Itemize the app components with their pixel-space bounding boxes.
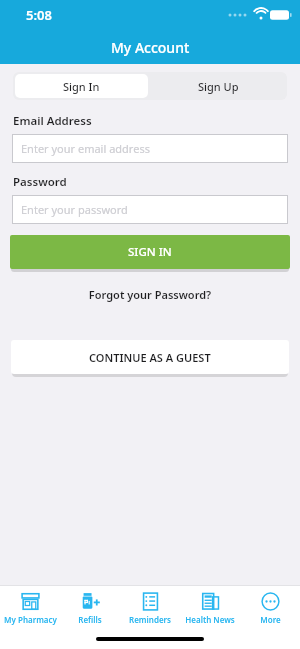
button[interactable]: CONTINUE AS A GUEST — [11, 340, 289, 374]
button[interactable]: Enter your email address — [12, 134, 288, 163]
button[interactable]: SIGN IN — [10, 235, 290, 269]
staticText: Email Address — [13, 113, 92, 129]
staticText: Sign Up — [198, 79, 239, 94]
staticText: Sign In — [63, 79, 100, 94]
button[interactable]: Sign Up — [150, 72, 287, 100]
staticText: Enter your email address — [21, 141, 150, 156]
staticText: SIGN IN — [128, 244, 172, 260]
staticText: Reminders — [129, 614, 171, 625]
button[interactable]: Enter your password — [12, 195, 288, 224]
staticText: More — [260, 614, 281, 625]
button[interactable]: My Pharmacy — [0, 586, 60, 629]
staticText: My Pharmacy — [4, 614, 57, 625]
button[interactable]: Reminders — [120, 586, 180, 629]
staticText: CONTINUE AS A GUEST — [89, 350, 211, 365]
button[interactable]: Sign In — [15, 74, 148, 98]
staticText: Health News — [185, 614, 235, 625]
button[interactable]: Refills — [60, 586, 120, 629]
staticText: Enter your password — [21, 202, 128, 217]
staticText: 5:08 — [26, 6, 52, 24]
button[interactable]: Health News — [180, 586, 240, 629]
staticText: My Account — [111, 38, 190, 57]
button[interactable]: More — [240, 586, 300, 629]
button[interactable]: Forgot your Password? — [0, 287, 300, 302]
staticText: Refills — [78, 614, 102, 625]
staticText: Password — [13, 174, 67, 190]
